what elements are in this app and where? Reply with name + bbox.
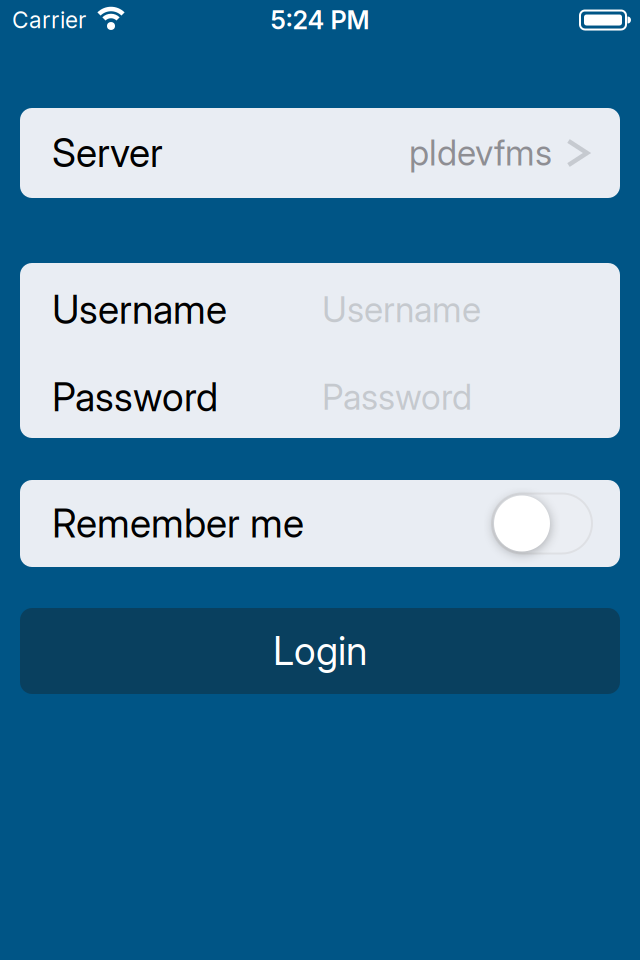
staticText: pldevfms — [409, 133, 552, 173]
staticText: Username — [322, 289, 481, 330]
staticText: Password — [52, 374, 218, 420]
button[interactable]: Login — [20, 608, 620, 694]
staticText: Server — [52, 130, 163, 176]
staticText: Carrier — [12, 7, 86, 33]
staticText: Remember me — [52, 501, 304, 546]
button[interactable] — [492, 493, 592, 553]
staticText: Password — [322, 377, 472, 418]
staticText: Login — [273, 628, 367, 674]
staticText: 5:24 PM — [270, 5, 369, 35]
button[interactable]: Username — [20, 263, 620, 350]
button[interactable]: Password — [20, 350, 620, 438]
button[interactable]: Server — [20, 108, 620, 198]
staticText: Username — [52, 287, 227, 332]
